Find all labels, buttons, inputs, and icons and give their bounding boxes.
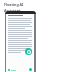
staticText: Floating AI: [4, 2, 24, 7]
button[interactable]: Send: [29, 68, 32, 71]
button[interactable]: AI assistant: [25, 48, 32, 55]
button[interactable]: [8, 69, 16, 71]
staticText: Assistant: [4, 8, 21, 13]
